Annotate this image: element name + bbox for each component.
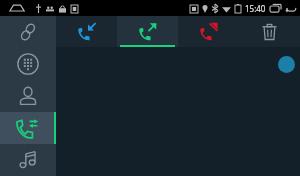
button[interactable]: Incoming calls [56, 16, 117, 47]
other: Back [285, 4, 296, 13]
button[interactable]: Call log [0, 112, 56, 144]
button[interactable]: Dialpad [0, 48, 56, 80]
button[interactable]: Bluetooth link [0, 16, 56, 48]
button[interactable]: Music [0, 144, 56, 176]
button[interactable]: Outgoing calls [117, 16, 178, 47]
button[interactable]: Contacts [0, 80, 56, 112]
staticText: 15:40 [245, 3, 266, 14]
button[interactable]: Delete [239, 16, 300, 47]
button[interactable]: Missed calls [178, 16, 239, 47]
other: Recents [270, 4, 281, 13]
